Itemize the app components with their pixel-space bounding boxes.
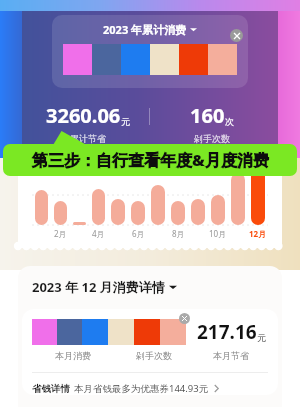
staticText: 元: [257, 332, 266, 343]
button[interactable]: [251, 165, 265, 225]
button[interactable]: [151, 185, 165, 225]
button[interactable]: [111, 199, 125, 225]
staticText: 本月消费: [55, 350, 91, 361]
staticText: 第三步：自行查看年度&月度消费: [32, 149, 269, 171]
staticText: 12月: [249, 228, 267, 239]
button[interactable]: [35, 190, 48, 225]
button[interactable]: [211, 195, 225, 225]
staticText: 2月: [54, 228, 67, 239]
staticText: 217.16: [197, 319, 257, 345]
staticText: 本月省钱最多为优惠券144.93元: [74, 382, 209, 395]
staticText: 剁手次数: [194, 133, 230, 144]
button[interactable]: 省钱详情: [32, 382, 268, 395]
staticText: 10月: [209, 228, 227, 239]
button[interactable]: 2023 年 12 月消费详情: [32, 278, 177, 296]
staticText: 160: [190, 102, 225, 129]
button[interactable]: [92, 189, 105, 225]
staticText: 剁手次数: [136, 350, 172, 361]
staticText: 2023 年累计消费: [103, 22, 187, 37]
button[interactable]: [54, 201, 67, 225]
button[interactable]: 第三步：自行查看年度&月度消费: [3, 144, 297, 176]
staticText: 3260.06: [46, 102, 121, 129]
staticText: 6月: [132, 228, 145, 239]
staticText: 累计节省: [70, 133, 106, 144]
staticText: 2023 年 12 月消费详情: [32, 278, 165, 296]
button[interactable]: [231, 173, 245, 225]
staticText: 次: [225, 116, 234, 127]
button[interactable]: [191, 199, 205, 225]
staticText: 8月: [172, 228, 185, 239]
button[interactable]: [131, 201, 145, 225]
button[interactable]: [73, 222, 86, 225]
button[interactable]: 2023 年累计消费: [52, 15, 248, 88]
button[interactable]: [171, 201, 185, 225]
staticText: 4月: [92, 228, 105, 239]
staticText: 省钱详情: [32, 383, 70, 395]
button[interactable]: Close: [230, 29, 243, 42]
staticText: 元: [121, 116, 130, 127]
button[interactable]: Close: [179, 313, 190, 324]
staticText: 本月节省: [213, 350, 249, 361]
